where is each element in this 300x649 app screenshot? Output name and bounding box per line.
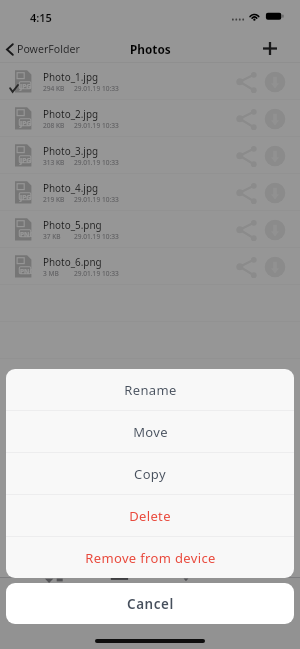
button[interactable]: PNG xyxy=(0,211,300,248)
button[interactable]: JPG xyxy=(0,137,300,174)
staticText: Remove from device xyxy=(85,549,216,567)
staticText: 29.01.19 10:33 xyxy=(74,121,119,130)
button[interactable]: Download xyxy=(262,104,288,134)
button[interactable]: Share xyxy=(233,178,259,208)
staticText: JPG xyxy=(20,119,32,128)
staticText: Photo_1.jpg xyxy=(43,70,99,83)
staticText: Move xyxy=(133,423,168,441)
staticText: PNG xyxy=(20,230,35,239)
staticText: JPG xyxy=(20,156,32,165)
button[interactable]: Rename xyxy=(6,369,294,410)
staticText: Delete xyxy=(129,507,171,525)
button[interactable]: Download xyxy=(262,252,288,282)
button[interactable]: Share xyxy=(233,67,259,97)
button[interactable]: PowerFolder xyxy=(0,42,88,56)
staticText: Cancel xyxy=(127,595,174,613)
button[interactable]: JPG xyxy=(0,63,300,100)
button[interactable]: Download xyxy=(262,215,288,245)
button[interactable]: Add xyxy=(256,35,284,62)
staticText: 3 MB xyxy=(43,269,74,278)
staticText: Photo_2.jpg xyxy=(43,107,99,120)
staticText: PNG xyxy=(20,267,35,276)
staticText: JPG xyxy=(20,193,32,202)
button[interactable]: Settings xyxy=(200,612,300,622)
button[interactable]: Share xyxy=(233,104,259,134)
staticText: 208 KB xyxy=(43,121,74,130)
staticText: 29.01.19 10:33 xyxy=(74,195,119,204)
button[interactable]: JPG xyxy=(0,174,300,211)
staticText: Photos xyxy=(130,41,171,57)
staticText: Copy xyxy=(134,465,166,483)
staticText: 29.01.19 10:33 xyxy=(74,84,119,93)
button[interactable]: Files xyxy=(0,612,100,622)
button[interactable]: Move xyxy=(6,411,294,452)
staticText: JPG xyxy=(20,82,32,91)
staticText: Photo_6.png xyxy=(43,255,102,268)
staticText: 294 KB xyxy=(43,84,74,93)
staticText: 4:15 xyxy=(30,10,52,25)
staticText: 29.01.19 10:33 xyxy=(74,158,119,167)
staticText: PowerFolder xyxy=(17,42,80,56)
button[interactable]: Share xyxy=(233,215,259,245)
staticText: 37 KB xyxy=(43,232,74,241)
staticText: 313 KB xyxy=(43,158,74,167)
button[interactable]: Download xyxy=(262,67,288,97)
button[interactable]: Delete xyxy=(6,495,294,536)
button[interactable]: Remove from device xyxy=(6,537,294,578)
staticText: 29.01.19 10:33 xyxy=(74,269,119,278)
staticText: Photo_5.png xyxy=(43,218,102,231)
staticText: Rename xyxy=(124,381,177,399)
button[interactable]: PNG xyxy=(0,248,300,285)
button[interactable]: Cancel xyxy=(6,583,294,624)
button[interactable]: Share xyxy=(233,141,259,171)
button[interactable]: Download xyxy=(262,178,288,208)
staticText: 29.01.19 10:33 xyxy=(74,232,119,241)
button[interactable]: Share xyxy=(233,252,259,282)
staticText: Photo_3.jpg xyxy=(43,144,99,157)
button[interactable]: Download xyxy=(262,141,288,171)
staticText: Photo_4.jpg xyxy=(43,181,99,194)
button[interactable]: Copy xyxy=(6,453,294,494)
staticText: 219 KB xyxy=(43,195,74,204)
button[interactable]: JPG xyxy=(0,100,300,137)
